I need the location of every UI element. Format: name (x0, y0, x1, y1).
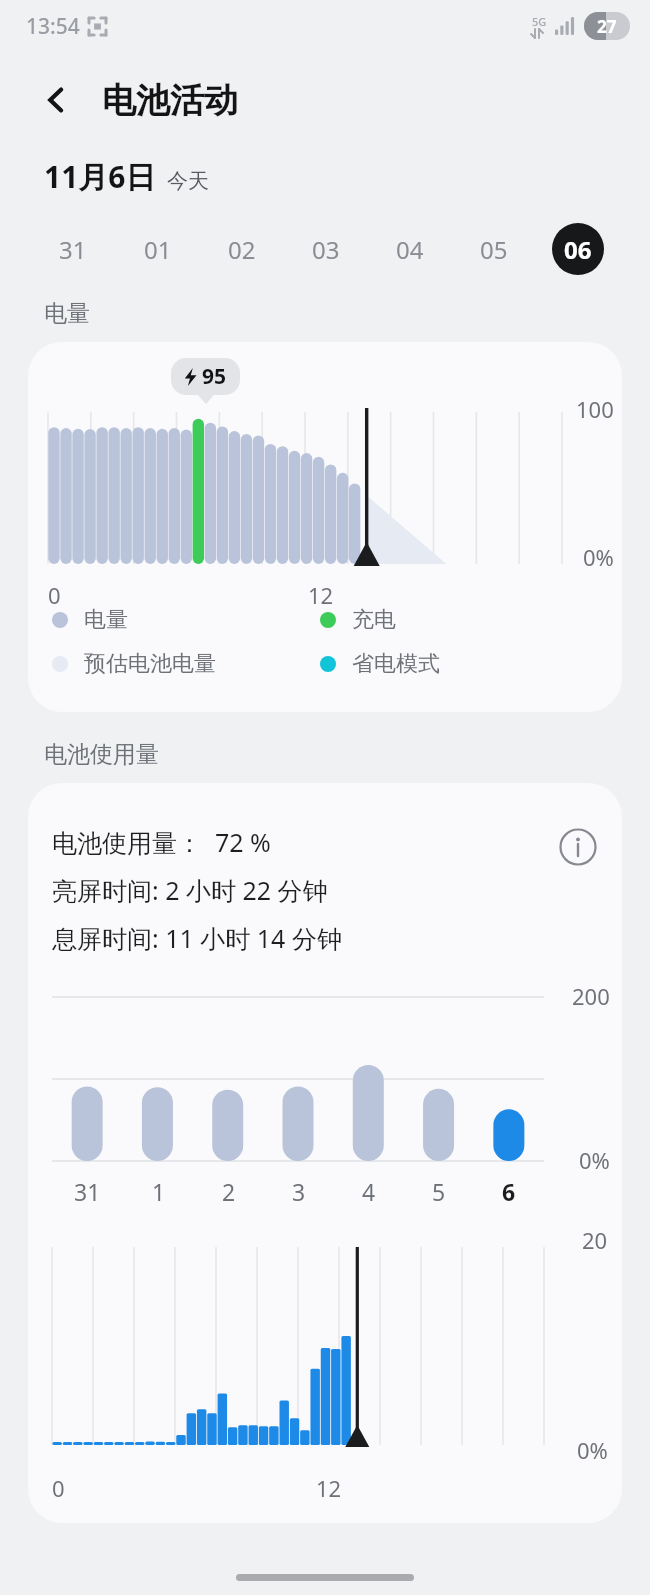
staticText: 1 (152, 1176, 166, 1207)
staticText: 息屏时间: 11 小时 14 分钟 (52, 921, 342, 955)
staticText: 95 (202, 362, 227, 391)
staticText: 0% (583, 542, 614, 572)
button[interactable]: 02 (200, 221, 284, 277)
staticText: 100 (576, 394, 614, 424)
staticText: 5 (432, 1176, 446, 1207)
staticText: 200 (572, 981, 610, 1011)
button[interactable]: 06 (536, 221, 620, 277)
staticText: 2 (222, 1176, 236, 1207)
staticText: 今天 (167, 168, 209, 194)
button[interactable]: 03 (284, 221, 368, 277)
staticText: 0 (52, 1473, 65, 1503)
staticText: 06 (564, 233, 592, 266)
button[interactable]: Information (556, 825, 600, 869)
button[interactable]: Back (34, 77, 80, 123)
staticText: 3 (292, 1176, 306, 1207)
staticText: 0 (48, 580, 61, 610)
staticText: 01 (144, 233, 172, 266)
staticText: 11月6日 (44, 156, 156, 197)
staticText: 31 (59, 233, 87, 266)
staticText: 4 (362, 1176, 376, 1207)
staticText: 亮屏时间: 2 小时 22 分钟 (52, 873, 328, 907)
staticText: 5G (532, 14, 547, 29)
staticText: 12 (308, 580, 334, 610)
staticText: 0% (579, 1145, 610, 1175)
staticText: 充电 (352, 606, 396, 634)
staticText: 0% (577, 1435, 608, 1465)
staticText: 电池使用量： 72 % (52, 825, 271, 859)
staticText: 31 (74, 1176, 101, 1207)
button[interactable]: 100 (28, 342, 622, 712)
staticText: 02 (228, 233, 256, 266)
staticText: 03 (312, 233, 340, 266)
button[interactable]: 31 (30, 221, 115, 277)
staticText: 电池使用量 (44, 740, 159, 769)
staticText: 13:54 (26, 12, 80, 41)
staticText: 6 (502, 1176, 516, 1207)
staticText: 电池活动 (102, 79, 238, 122)
staticText: 05 (480, 233, 508, 266)
staticText: 27 (597, 15, 617, 38)
staticText: 省电模式 (352, 650, 440, 678)
button[interactable]: 01 (115, 221, 200, 277)
staticText: 04 (396, 233, 424, 266)
button[interactable]: 04 (368, 221, 452, 277)
button[interactable]: 05 (452, 221, 536, 277)
staticText: 电量 (44, 299, 90, 328)
staticText: 电量 (84, 606, 128, 634)
staticText: 12 (316, 1473, 342, 1503)
staticText: 20 (582, 1225, 608, 1255)
staticText: 预估电池电量 (84, 650, 216, 678)
